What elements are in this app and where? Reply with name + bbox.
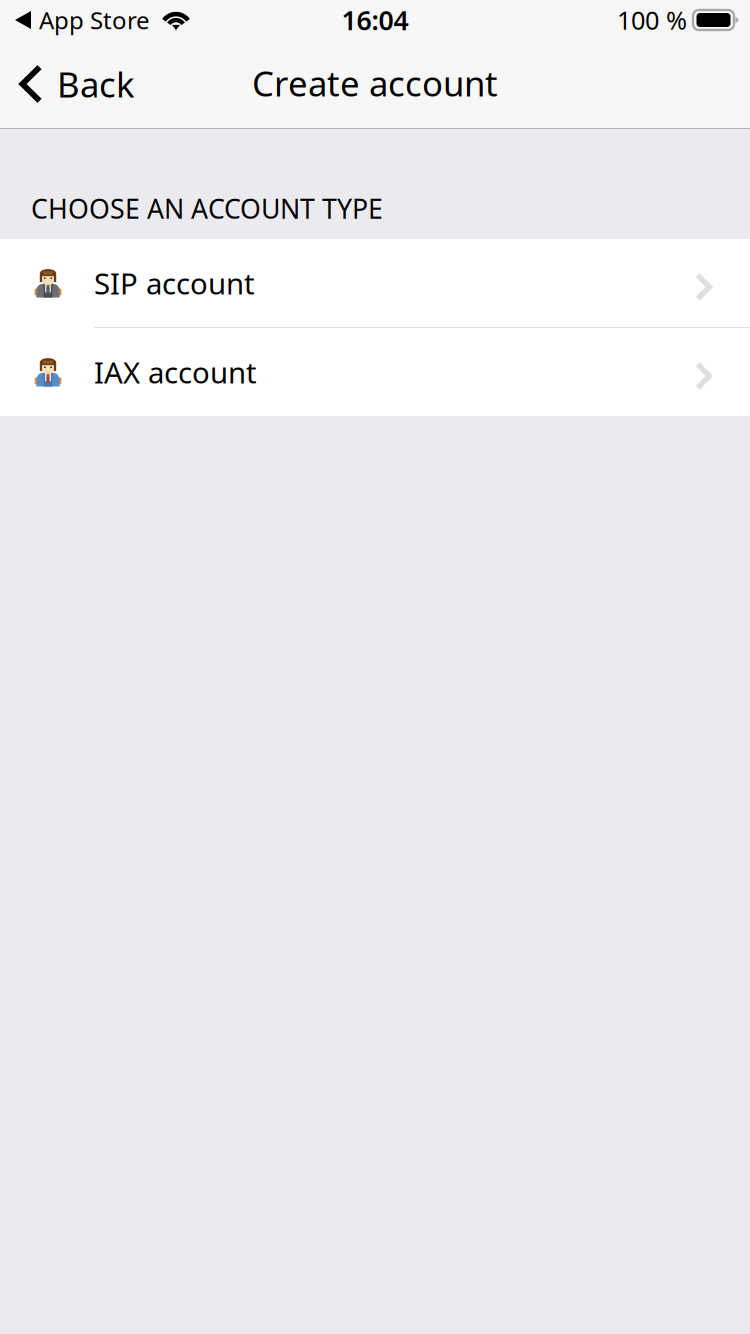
button[interactable]: IAX account [0, 328, 750, 416]
staticText: CHOOSE AN ACCOUNT TYPE [31, 191, 383, 226]
button[interactable]: SIP account [0, 239, 750, 327]
staticText: SIP account [94, 263, 255, 302]
staticText: Back [57, 61, 135, 107]
staticText: 100 % [617, 3, 687, 37]
staticText: Create account [252, 60, 498, 106]
staticText: IAX account [94, 352, 257, 391]
staticText: App Store [39, 4, 150, 36]
staticText: 16:04 [341, 2, 408, 38]
button[interactable]: Back [0, 40, 157, 128]
button[interactable]: App Store [15, 0, 150, 40]
